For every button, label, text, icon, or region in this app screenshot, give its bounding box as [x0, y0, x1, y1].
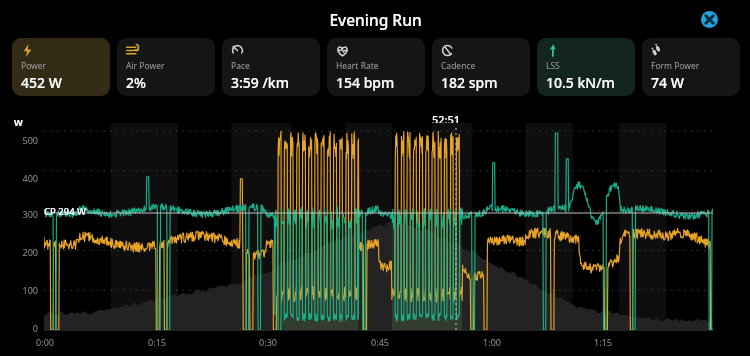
staticText: LSS	[546, 60, 560, 72]
staticText: 0	[32, 322, 38, 334]
button[interactable]: Cadence	[432, 38, 530, 96]
staticText: Pace	[231, 60, 250, 72]
staticText: 10.5 kN/m	[546, 73, 615, 92]
staticText: 100	[22, 284, 38, 296]
button[interactable]: Air Power	[117, 38, 215, 96]
button[interactable]: Form Power	[642, 38, 740, 96]
staticText: 3:59 /km	[231, 73, 289, 92]
staticText: 452 W	[21, 73, 62, 92]
staticText: 300	[22, 208, 38, 220]
staticText: Evening Run	[329, 9, 422, 30]
button[interactable]: Power	[12, 38, 110, 96]
staticText: Form Power	[651, 60, 700, 72]
staticText: 74 W	[651, 73, 684, 92]
staticText: 154 bpm	[336, 73, 395, 92]
staticText: 400	[22, 172, 38, 184]
staticText: Heart Rate	[336, 60, 379, 72]
staticText: Air Power	[126, 60, 165, 72]
staticText: 0:00	[36, 336, 54, 348]
staticText: 182 spm	[441, 73, 498, 92]
staticText: 500	[22, 134, 38, 146]
staticText: 2%	[126, 73, 146, 92]
button[interactable]: Pace	[222, 38, 320, 96]
button[interactable]: LSS	[537, 38, 635, 96]
staticText: 0:45	[371, 336, 389, 348]
staticText: 1:15	[594, 336, 612, 348]
staticText: 1:00	[483, 336, 501, 348]
button[interactable]: Heart Rate	[327, 38, 425, 96]
staticText: Cadence	[441, 60, 476, 72]
staticText: 200	[22, 246, 38, 258]
staticText: CP 294 W	[44, 205, 87, 218]
button[interactable]: Close	[698, 8, 720, 30]
staticText: 52:51	[432, 112, 461, 127]
staticText: Power	[21, 60, 47, 72]
staticText: W	[14, 116, 23, 128]
staticText: 0:30	[259, 336, 277, 348]
staticText: 0:15	[148, 336, 166, 348]
